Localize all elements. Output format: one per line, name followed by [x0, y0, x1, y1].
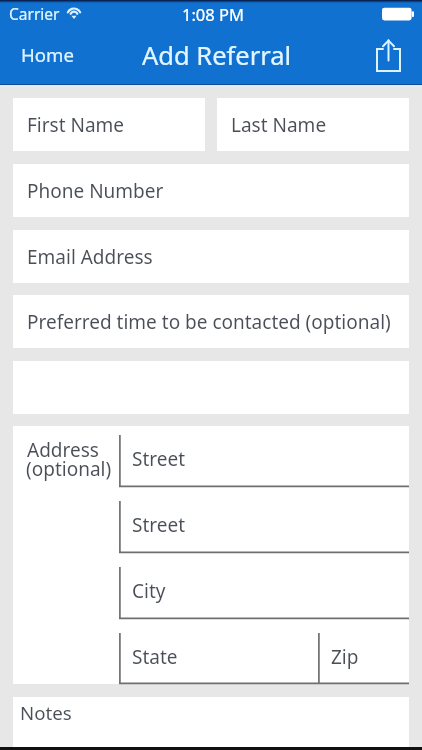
- staticText: State: [132, 644, 178, 670]
- staticText: Address: [27, 437, 99, 463]
- staticText: Street: [132, 512, 186, 538]
- staticText: City: [132, 578, 166, 604]
- button[interactable]: Last Name: [217, 98, 409, 151]
- button[interactable]: Email Address: [13, 230, 409, 283]
- button[interactable]: State: [119, 633, 318, 684]
- staticText: Add Referral: [142, 38, 292, 73]
- button[interactable]: Home: [0, 30, 90, 79]
- staticText: Carrier: [9, 3, 60, 24]
- staticText: Preferred time to be contacted (optional…: [27, 309, 391, 335]
- staticText: Street: [132, 446, 186, 472]
- button[interactable]: Notes: [13, 697, 409, 747]
- staticText: First Name: [27, 112, 125, 138]
- button[interactable]: Preferred time to be contacted (optional…: [13, 295, 409, 348]
- staticText: Email Address: [27, 244, 153, 270]
- staticText: Notes: [20, 700, 72, 725]
- staticText: Home: [21, 42, 74, 67]
- button[interactable]: Share: [360, 28, 422, 81]
- staticText: Phone Number: [27, 178, 164, 204]
- staticText: (optional): [26, 456, 112, 482]
- button[interactable]: Zip: [318, 633, 409, 684]
- button[interactable]: First Name: [13, 98, 205, 151]
- button[interactable]: City: [119, 567, 409, 619]
- button[interactable]: Phone Number: [13, 164, 409, 217]
- staticText: Zip: [331, 644, 359, 670]
- staticText: 1:08 PM: [182, 3, 244, 25]
- staticText: Last Name: [231, 112, 327, 138]
- button[interactable]: Street: [119, 435, 409, 487]
- button[interactable]: Street: [119, 501, 409, 553]
